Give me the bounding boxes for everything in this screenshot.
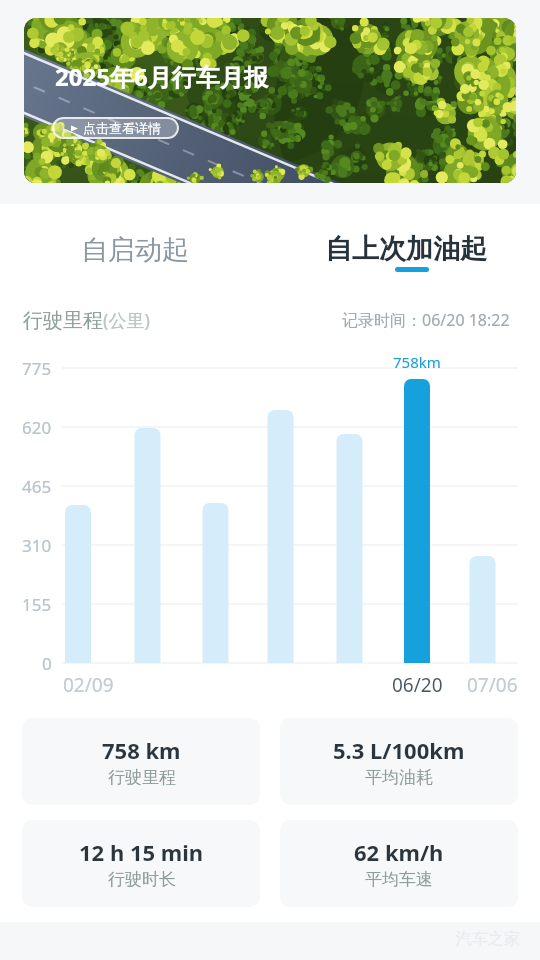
staticText: 02/09 bbox=[63, 672, 114, 698]
staticText: 自上次加油起 bbox=[325, 232, 487, 266]
button[interactable]: 点击查看详情 bbox=[52, 117, 179, 139]
staticText: 310 bbox=[22, 534, 52, 557]
staticText: 平均油耗 bbox=[365, 767, 433, 788]
staticText: 465 bbox=[22, 475, 52, 498]
staticText: 自启动起 bbox=[81, 233, 189, 267]
staticText: 行驶里程(公里) bbox=[23, 308, 150, 333]
staticText: 07/06 bbox=[467, 672, 518, 698]
button[interactable]: 62 km/h bbox=[280, 820, 518, 907]
staticText: 行驶里程 bbox=[108, 767, 176, 788]
button[interactable]: 自上次加油起 bbox=[296, 221, 516, 277]
staticText: 0 bbox=[42, 652, 52, 675]
staticText: 平均车速 bbox=[365, 869, 433, 890]
button[interactable]: 2025年6月行车月报 bbox=[24, 18, 516, 183]
staticText: 5.3 L/100km bbox=[333, 735, 465, 765]
staticText: 2025年6月行车月报 bbox=[55, 60, 268, 93]
staticText: 汽车之家 bbox=[456, 929, 520, 949]
staticText: 775 bbox=[22, 357, 52, 380]
staticText: 06/20 bbox=[392, 672, 443, 698]
staticText: 758 km bbox=[102, 735, 181, 765]
staticText: 155 bbox=[22, 593, 52, 616]
button[interactable]: 5.3 L/100km bbox=[280, 718, 518, 805]
staticText: 12 h 15 min bbox=[79, 837, 204, 867]
staticText: 758km bbox=[393, 352, 441, 372]
staticText: 62 km/h bbox=[354, 837, 444, 867]
button[interactable]: 758 km bbox=[22, 718, 260, 805]
staticText: 620 bbox=[22, 416, 52, 439]
staticText: 记录时间：06/20 18:22 bbox=[342, 309, 510, 331]
button[interactable]: 自启动起 bbox=[45, 222, 225, 278]
button[interactable]: 12 h 15 min bbox=[22, 820, 260, 907]
staticText: 行驶时长 bbox=[108, 869, 176, 890]
staticText: 点击查看详情 bbox=[83, 120, 161, 136]
